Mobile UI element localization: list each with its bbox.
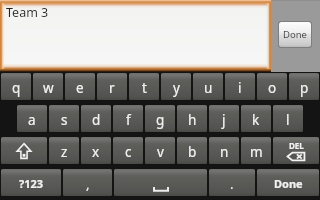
staticText: Done	[274, 176, 303, 191]
button[interactable]: Shift	[1, 137, 47, 164]
staticText: n	[220, 143, 229, 161]
button[interactable]: Done	[257, 169, 319, 196]
staticText: e	[76, 79, 84, 97]
button[interactable]: Done	[279, 22, 311, 47]
staticText: y	[173, 79, 180, 97]
button[interactable]: o	[257, 73, 287, 100]
staticText: r	[109, 79, 115, 97]
staticText: k	[252, 111, 260, 129]
button[interactable]: j	[209, 105, 239, 132]
staticText: ,	[86, 175, 90, 193]
staticText: j	[222, 111, 226, 129]
button[interactable]: k	[241, 105, 271, 132]
button[interactable]: d	[81, 105, 111, 132]
button[interactable]: Team 3	[0, 0, 271, 72]
staticText: q	[12, 79, 21, 97]
staticText: u	[204, 79, 213, 97]
button[interactable]: n	[209, 137, 239, 164]
button[interactable]: x	[81, 137, 111, 164]
staticText: h	[188, 111, 197, 129]
button[interactable]: v	[145, 137, 175, 164]
button[interactable]: Delete	[273, 137, 319, 164]
staticText: t	[142, 79, 147, 97]
button[interactable]: h	[177, 105, 207, 132]
staticText: x	[92, 143, 100, 161]
staticText: ?123	[19, 176, 44, 191]
button[interactable]: q	[1, 73, 31, 100]
staticText: Done	[283, 28, 307, 41]
button[interactable]: g	[145, 105, 175, 132]
button[interactable]: a	[17, 105, 47, 132]
button[interactable]: y	[161, 73, 191, 100]
staticText: v	[157, 143, 164, 161]
staticText: p	[300, 79, 309, 97]
button[interactable]: i	[225, 73, 255, 100]
button[interactable]: z	[49, 137, 79, 164]
button[interactable]: p	[289, 73, 319, 100]
button[interactable]: ,	[63, 169, 112, 196]
staticText: .	[230, 175, 234, 193]
staticText: a	[28, 111, 36, 129]
button[interactable]: c	[113, 137, 143, 164]
button[interactable]: Space	[114, 169, 207, 196]
button[interactable]: e	[65, 73, 95, 100]
staticText: o	[268, 79, 277, 97]
button[interactable]: s	[49, 105, 79, 132]
button[interactable]: b	[177, 137, 207, 164]
button[interactable]: w	[33, 73, 63, 100]
staticText: m	[250, 143, 263, 161]
staticText: s	[61, 111, 68, 129]
staticText: Team 3	[6, 4, 49, 21]
staticText: i	[238, 79, 242, 97]
button[interactable]: m	[241, 137, 271, 164]
button[interactable]: ?123	[1, 169, 61, 196]
staticText: l	[286, 111, 290, 129]
staticText: DEL	[289, 140, 304, 151]
button[interactable]: .	[209, 169, 255, 196]
staticText: d	[92, 111, 101, 129]
staticText: c	[125, 143, 132, 161]
staticText: b	[188, 143, 197, 161]
staticText: z	[61, 143, 68, 161]
button[interactable]: f	[113, 105, 143, 132]
staticText: g	[156, 111, 165, 129]
staticText: f	[126, 111, 131, 129]
button[interactable]: t	[129, 73, 159, 100]
button[interactable]: l	[273, 105, 303, 132]
button[interactable]: u	[193, 73, 223, 100]
staticText: w	[43, 79, 54, 97]
button[interactable]: r	[97, 73, 127, 100]
